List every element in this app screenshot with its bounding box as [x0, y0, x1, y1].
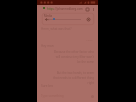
button[interactable]: Hmm, what was that? — [41, 27, 72, 31]
button[interactable]: Tabs — [85, 7, 90, 12]
button[interactable]: Because the other factor who will constr… — [53, 50, 94, 64]
button[interactable]: Sure bro — [41, 84, 53, 88]
button[interactable]: But the two hands, to seem that needs to… — [53, 71, 94, 85]
button[interactable]: Hey man — [41, 44, 54, 48]
staticText: Media — [44, 14, 53, 18]
button[interactable]: Mute — [44, 17, 49, 22]
button[interactable]: Media — [42, 13, 94, 25]
staticText: ://johanmedberg.com — [54, 7, 83, 11]
button[interactable]: Settings — [86, 17, 91, 22]
button[interactable]: More options — [91, 7, 96, 12]
staticText: https — [47, 7, 54, 11]
